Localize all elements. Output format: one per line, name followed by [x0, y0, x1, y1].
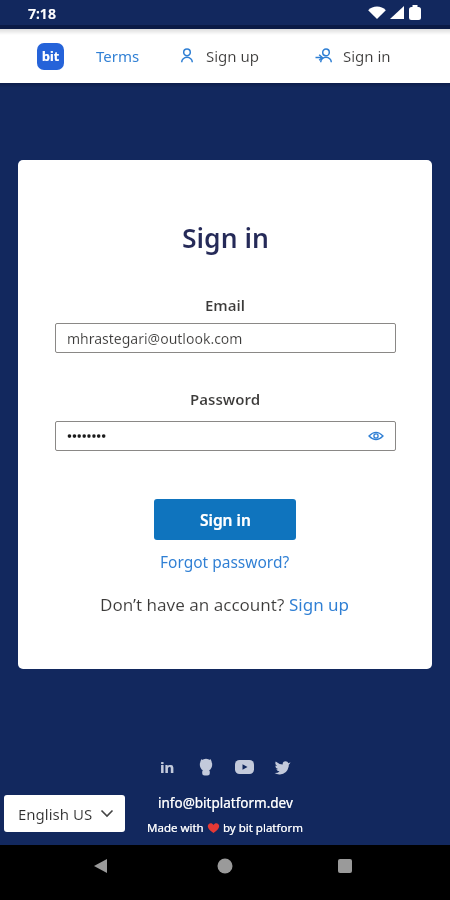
button[interactable] [80, 845, 140, 900]
staticText: in [160, 757, 175, 777]
button[interactable]: Forgot password? [160, 551, 290, 572]
staticText: Email [205, 295, 246, 315]
staticText: by bit platform [220, 820, 303, 836]
staticText: Forgot password? [160, 551, 290, 572]
staticText: Password [190, 389, 261, 409]
staticText: bit [42, 48, 60, 65]
staticText: English US [18, 804, 93, 824]
staticText: Sign up [206, 46, 259, 66]
button[interactable]: info@bitplatform.dev [158, 794, 293, 812]
staticText: Don’t have an account? [100, 593, 289, 616]
staticText: Terms [96, 46, 140, 66]
button[interactable]: Sign in [315, 29, 391, 83]
button[interactable]: Sign up [289, 593, 350, 616]
button[interactable] [195, 845, 255, 900]
button[interactable] [235, 760, 254, 774]
staticText: 7:18 [28, 4, 56, 23]
button[interactable] [197, 758, 215, 776]
button[interactable]: Terms [88, 29, 148, 83]
button[interactable]: Sign up [178, 29, 259, 83]
button[interactable]: Sign in [154, 499, 296, 540]
staticText: Sign up [289, 593, 350, 616]
staticText: Sign in [343, 46, 391, 66]
staticText: •••••••• [67, 427, 107, 445]
staticText: mhrastegari@outlook.com [67, 329, 243, 348]
button[interactable] [274, 760, 291, 774]
button[interactable]: bit [37, 43, 64, 70]
button[interactable] [315, 845, 375, 900]
staticText: Sign in [182, 220, 269, 256]
staticText: info@bitplatform.dev [158, 794, 293, 812]
staticText: Sign in [200, 509, 251, 530]
button[interactable]: •••••••• [55, 421, 396, 451]
button[interactable]: in [160, 757, 175, 777]
button[interactable]: English US [4, 795, 125, 832]
button[interactable]: mhrastegari@outlook.com [55, 323, 396, 353]
staticText: Made with [147, 820, 207, 836]
